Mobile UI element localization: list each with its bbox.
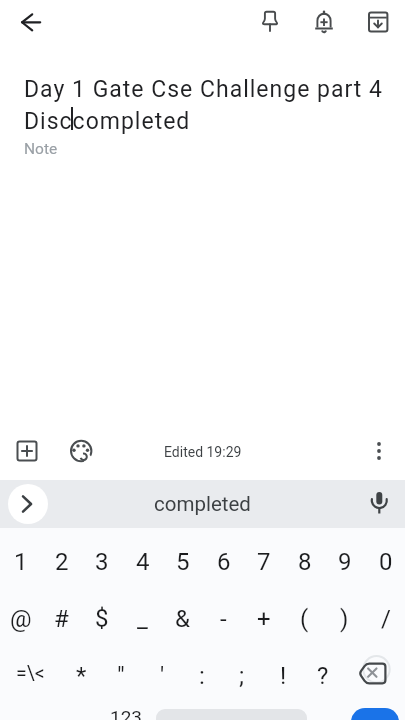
staticText: & bbox=[175, 605, 190, 633]
button[interactable]: 6 bbox=[203, 533, 244, 590]
staticText: : bbox=[199, 662, 205, 690]
button[interactable] bbox=[248, 0, 292, 44]
staticText: 123 bbox=[110, 706, 143, 720]
staticText: - bbox=[220, 605, 227, 633]
staticText: / bbox=[381, 605, 391, 633]
button[interactable]: completed bbox=[0, 480, 405, 528]
staticText: ; bbox=[239, 662, 245, 690]
staticText: Edited 19:29 bbox=[164, 444, 242, 460]
button[interactable] bbox=[59, 429, 103, 473]
staticText: ) bbox=[340, 605, 349, 633]
button[interactable]: 2 bbox=[41, 533, 82, 590]
button[interactable]: * bbox=[61, 647, 101, 704]
staticText: ? bbox=[317, 662, 329, 690]
staticText: 0 bbox=[379, 548, 393, 576]
button[interactable]: ' bbox=[142, 647, 182, 704]
button[interactable] bbox=[5, 429, 49, 473]
staticText: + bbox=[257, 605, 271, 633]
button[interactable]: 1 bbox=[0, 533, 41, 590]
button[interactable]: : bbox=[182, 647, 222, 704]
button[interactable]: # bbox=[41, 590, 82, 647]
staticText: 2 bbox=[55, 548, 69, 576]
button[interactable] bbox=[357, 482, 401, 526]
button[interactable] bbox=[302, 0, 346, 44]
staticText: Note bbox=[24, 140, 58, 158]
button[interactable]: @ bbox=[0, 590, 41, 647]
button[interactable]: - bbox=[203, 590, 244, 647]
button[interactable]: 3 bbox=[81, 533, 122, 590]
staticText: _ bbox=[137, 605, 148, 633]
staticText: * bbox=[76, 662, 87, 690]
button[interactable]: ? bbox=[303, 647, 343, 704]
button[interactable]: 5 bbox=[162, 533, 203, 590]
button[interactable]: 4 bbox=[122, 533, 163, 590]
button[interactable]: ) bbox=[324, 590, 365, 647]
staticText: 3 bbox=[95, 548, 109, 576]
button[interactable] bbox=[156, 709, 307, 720]
button[interactable] bbox=[8, 484, 48, 524]
staticText: ' bbox=[160, 662, 165, 690]
button[interactable] bbox=[344, 647, 405, 704]
button[interactable]: =\< bbox=[0, 647, 61, 704]
button[interactable] bbox=[356, 0, 400, 44]
button[interactable]: ; bbox=[222, 647, 262, 704]
button[interactable]: / bbox=[365, 590, 405, 647]
staticText: 4 bbox=[136, 548, 150, 576]
staticText: Day 1 Gate Cse Challenge part 4 Disccomp… bbox=[24, 76, 383, 134]
button[interactable]: 8 bbox=[284, 533, 325, 590]
button[interactable] bbox=[351, 708, 399, 720]
button[interactable]: " bbox=[101, 647, 141, 704]
staticText: ! bbox=[280, 662, 287, 690]
button[interactable] bbox=[10, 0, 54, 44]
staticText: 7 bbox=[257, 548, 271, 576]
button[interactable]: 7 bbox=[243, 533, 284, 590]
staticText: completed bbox=[154, 492, 251, 516]
staticText: 8 bbox=[298, 548, 312, 576]
staticText: $ bbox=[95, 605, 109, 633]
staticText: 9 bbox=[338, 548, 352, 576]
button[interactable]: 9 bbox=[324, 533, 365, 590]
staticText: # bbox=[54, 605, 69, 633]
button[interactable]: ( bbox=[284, 590, 325, 647]
staticText: =\< bbox=[16, 662, 45, 685]
button[interactable]: & bbox=[162, 590, 203, 647]
staticText: 6 bbox=[217, 548, 231, 576]
staticText: 5 bbox=[176, 548, 190, 576]
button[interactable]: 123 bbox=[95, 706, 157, 720]
staticText: @ bbox=[10, 605, 32, 633]
staticText: ( bbox=[300, 605, 309, 633]
staticText: 1 bbox=[14, 548, 28, 576]
button[interactable]: $ bbox=[81, 590, 122, 647]
button[interactable]: + bbox=[243, 590, 284, 647]
button[interactable]: ! bbox=[263, 647, 303, 704]
button[interactable]: _ bbox=[122, 590, 163, 647]
staticText: " bbox=[117, 662, 125, 690]
button[interactable]: 0 bbox=[365, 533, 405, 590]
button[interactable] bbox=[356, 429, 400, 473]
